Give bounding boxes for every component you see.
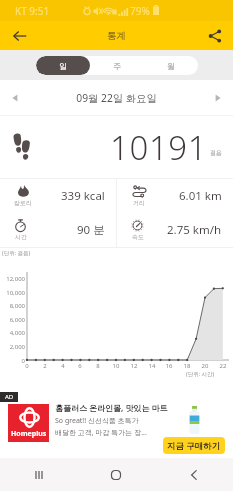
button[interactable]: 주 (90, 56, 144, 75)
staticText: AD (5, 393, 14, 401)
staticText: 22 (217, 362, 229, 370)
staticText: 79% (130, 4, 150, 18)
button[interactable]: Previous day (6, 89, 24, 107)
button[interactable]: 속도 (131, 213, 222, 247)
staticText: 339 kcal (61, 188, 105, 204)
staticText: 18 (181, 362, 193, 370)
staticText: Homeplus (11, 429, 47, 439)
staticText: 통계 (107, 30, 126, 42)
staticText: 월 (167, 61, 175, 71)
staticText: 2,000 (1, 343, 25, 351)
staticText: 90 분 (77, 222, 105, 238)
staticText: 홈플러스 온라인몰, 맛있는 마트 (55, 402, 168, 413)
staticText: 4,000 (1, 329, 25, 337)
staticText: 10,000 (1, 289, 25, 297)
button[interactable]: 월 (144, 56, 198, 75)
staticText: 8 (92, 362, 104, 370)
staticText: 걸음 (210, 149, 222, 157)
button[interactable]: Recent apps (26, 462, 52, 488)
button[interactable]: Back (181, 462, 207, 488)
button[interactable]: 지금 구매하기 (163, 437, 225, 454)
staticText: (단위: 시간) (186, 370, 215, 378)
staticText: 8,000 (1, 302, 25, 310)
button[interactable]: 시간 (14, 213, 105, 247)
staticText: 주 (113, 61, 121, 71)
staticText: 6 (74, 362, 86, 370)
button[interactable]: Back (9, 25, 31, 47)
button[interactable]: Home (103, 462, 129, 488)
staticText: 0 (1, 357, 25, 365)
button[interactable]: Share (204, 25, 226, 47)
staticText: 2.75 km/h (167, 222, 222, 238)
staticText: KT 9:51 (15, 4, 50, 18)
staticText: 16 (163, 362, 175, 370)
button[interactable]: Next day (209, 89, 227, 107)
button[interactable]: 거리 (131, 179, 222, 213)
staticText: 2 (39, 362, 51, 370)
staticText: 10 (110, 362, 122, 370)
staticText: 12 (128, 362, 140, 370)
staticText: 일 (59, 61, 67, 71)
staticText: 0 (21, 362, 33, 370)
button[interactable]: 일 (36, 56, 90, 75)
staticText: 10191 (110, 125, 208, 170)
staticText: 20 (199, 362, 211, 370)
staticText: 속도 (132, 233, 144, 241)
staticText: 09월 22일 화요일 (24, 91, 209, 105)
staticText: 12,000 (1, 275, 25, 283)
staticText: 시간 (15, 233, 27, 241)
staticText: 칼로리 (14, 199, 32, 207)
staticText: 거리 (133, 199, 145, 207)
staticText: So great!! 신선식품 초특가 배달한 고객, 마감 특가는 장... (55, 416, 147, 437)
staticText: 지금 구매하기 (167, 440, 221, 452)
button[interactable]: 칼로리 (14, 179, 105, 213)
staticText: 4 (57, 362, 69, 370)
staticText: 14 (146, 362, 158, 370)
staticText: 6,000 (1, 316, 25, 324)
staticText: (단위: 걸음) (2, 249, 31, 257)
staticText: 6.01 km (179, 188, 222, 204)
